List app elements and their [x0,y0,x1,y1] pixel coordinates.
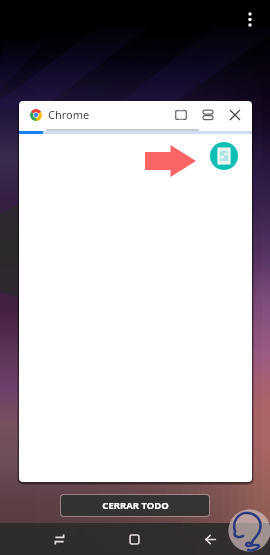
button[interactable]: Chrome [19,101,252,482]
button[interactable]: More options [240,6,260,30]
button[interactable]: Close [224,104,246,126]
button[interactable]: Recent apps [38,523,81,555]
button[interactable]: Back [189,523,232,555]
staticText: Chrome [48,107,90,122]
staticText: CERRAR TODO [102,499,169,512]
button[interactable]: Pop-up view [210,142,238,170]
button[interactable]: Split screen view [197,104,219,126]
button[interactable]: Home [113,523,156,555]
button[interactable]: CERRAR TODO [61,495,209,516]
button[interactable]: Pop-up view [170,104,192,126]
